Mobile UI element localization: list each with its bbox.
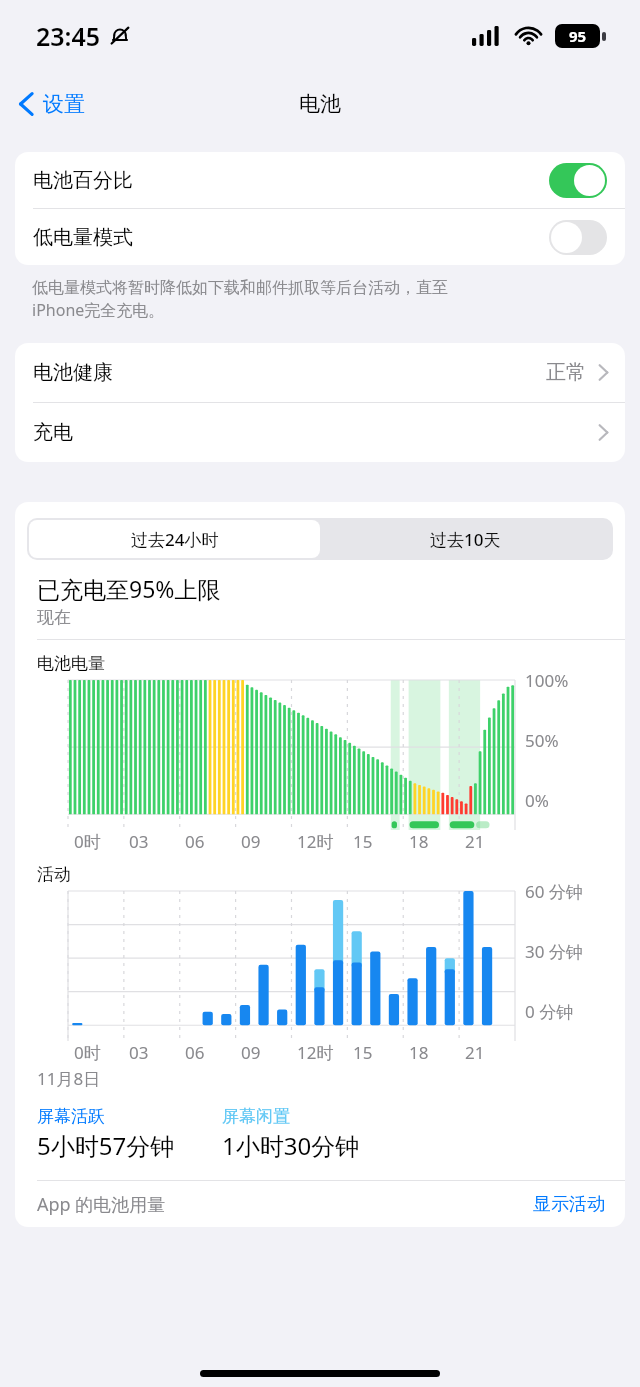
button[interactable]: 充电 [15,403,625,462]
staticText: 电池健康 [33,360,546,385]
staticText: 5小时57分钟 [37,1129,175,1162]
staticText: 09 [241,830,261,853]
staticText: 0 分钟 [525,1000,574,1023]
staticText: 低电量模式 [33,225,549,250]
staticText: 23:45 [36,19,101,53]
staticText: 设置 [43,91,85,117]
staticText: 活动 [37,864,71,885]
staticText: 95 [569,26,587,46]
staticText: 1小时30分钟 [222,1129,360,1162]
staticText: 电池 [299,91,341,117]
staticText: 100% [525,669,569,692]
button[interactable]: 电池百分比 [15,152,625,208]
button[interactable]: 过去24小时 [29,520,320,558]
staticText: 09 [241,1041,261,1064]
staticText: 0% [525,789,549,812]
staticText: 03 [129,830,149,853]
staticText: 过去10天 [430,528,501,551]
staticText: 15 [353,830,373,853]
staticText: 显示活动 [533,1193,605,1216]
button[interactable]: 电池健康 [15,343,625,402]
staticText: 18 [409,830,429,853]
button[interactable]: App 的电池用量 [15,1181,625,1227]
staticText: 屏幕活跃 [37,1106,105,1127]
staticText: 现在 [37,607,71,628]
staticText: 正常 [546,360,586,385]
staticText: 15 [353,1041,373,1064]
staticText: 12时 [297,1041,334,1064]
staticText: 60 分钟 [525,880,583,903]
staticText: 30 分钟 [525,940,583,963]
button[interactable]: 低电量模式 [15,209,625,265]
staticText: 50% [525,729,559,752]
button[interactable]: Toggle on [549,163,607,198]
staticText: 低电量模式将暂时降低如下载和邮件抓取等后台活动，直至 iPhone完全充电。 [32,278,448,321]
staticText: 03 [129,1041,149,1064]
staticText: 06 [185,1041,205,1064]
staticText: 06 [185,830,205,853]
staticText: 电池百分比 [33,168,549,193]
staticText: 屏幕闲置 [222,1106,290,1127]
staticText: 21 [465,1041,485,1064]
staticText: 0时 [74,1041,101,1064]
button[interactable]: 设置 [0,84,97,124]
staticText: App 的电池用量 [37,1192,533,1217]
staticText: 充电 [33,420,598,445]
staticText: 18 [409,1041,429,1064]
staticText: 11月8日 [37,1067,101,1090]
staticText: 过去24小时 [131,528,219,551]
staticText: 0时 [74,830,101,853]
button[interactable]: 过去10天 [320,520,611,558]
staticText: 12时 [297,830,334,853]
staticText: 已充电至95%上限 [37,573,221,604]
staticText: 电池电量 [37,653,105,674]
button[interactable]: Toggle off [549,220,607,255]
staticText: 21 [465,830,485,853]
